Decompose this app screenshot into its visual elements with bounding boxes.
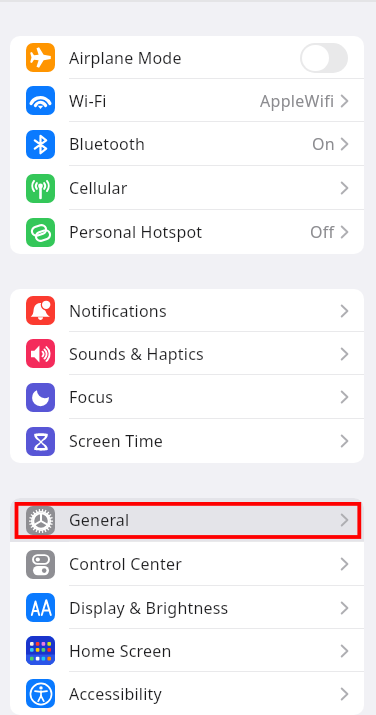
button[interactable]: Focus bbox=[10, 375, 364, 419]
button[interactable]: Screen Time bbox=[10, 419, 364, 463]
staticText: AppleWifi bbox=[260, 90, 335, 112]
staticText: Wi-Fi bbox=[69, 90, 107, 112]
button[interactable]: General bbox=[10, 498, 364, 542]
staticText: Personal Hotspot bbox=[69, 221, 203, 243]
button[interactable]: Notifications bbox=[10, 289, 364, 332]
staticText: Accessibility bbox=[69, 683, 162, 705]
staticText: Cellular bbox=[69, 177, 128, 199]
staticText: Display & Brightness bbox=[69, 597, 229, 619]
staticText: Off bbox=[310, 221, 335, 243]
staticText: Screen Time bbox=[69, 430, 164, 452]
staticText: Bluetooth bbox=[69, 133, 146, 155]
button[interactable]: Sounds & Haptics bbox=[10, 332, 364, 375]
staticText: Home Screen bbox=[69, 640, 172, 662]
staticText: Control Center bbox=[69, 553, 182, 575]
button[interactable]: Display & Brightness bbox=[10, 586, 364, 629]
button[interactable]: Airplane Mode toggle bbox=[300, 43, 348, 73]
button[interactable]: Bluetooth bbox=[10, 122, 364, 166]
staticText: Notifications bbox=[69, 300, 167, 322]
staticText: On bbox=[312, 133, 335, 155]
button[interactable]: Cellular bbox=[10, 166, 364, 210]
staticText: Airplane Mode bbox=[69, 47, 182, 69]
button[interactable]: Control Center bbox=[10, 542, 364, 586]
staticText: Focus bbox=[69, 386, 114, 408]
button[interactable]: Home Screen bbox=[10, 629, 364, 672]
button[interactable]: Wi-Fi bbox=[10, 79, 364, 122]
button[interactable]: Accessibility bbox=[10, 672, 364, 715]
staticText: General bbox=[69, 509, 130, 531]
staticText: Sounds & Haptics bbox=[69, 343, 204, 365]
button[interactable]: Personal Hotspot bbox=[10, 210, 364, 254]
button[interactable]: Airplane Mode bbox=[10, 36, 364, 79]
